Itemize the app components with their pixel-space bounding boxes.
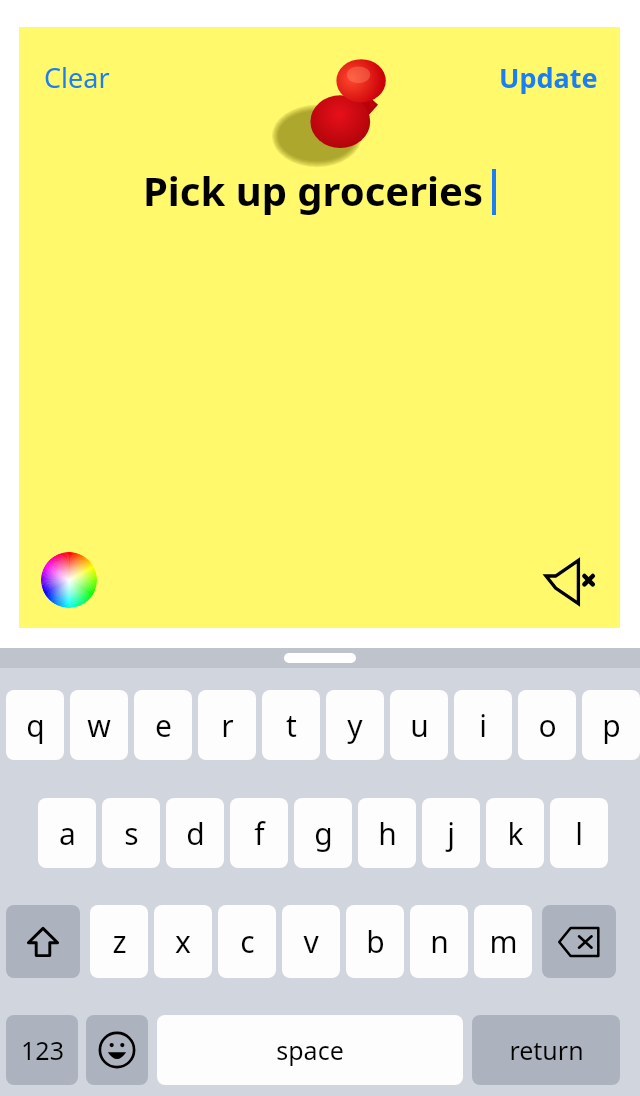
staticText: k: [507, 813, 524, 854]
button[interactable]: Emoji: [86, 1015, 148, 1085]
button[interactable]: t: [262, 690, 320, 760]
staticText: v: [303, 921, 319, 962]
staticText: m: [489, 921, 518, 962]
staticText: d: [186, 813, 205, 854]
staticText: s: [124, 813, 139, 854]
button[interactable]: Clear: [19, 45, 135, 110]
button[interactable]: b: [346, 905, 404, 978]
button[interactable]: p: [582, 690, 640, 760]
staticText: space: [276, 1033, 344, 1067]
staticText: z: [112, 921, 127, 962]
button[interactable]: k: [486, 798, 544, 868]
button[interactable]: u: [390, 690, 448, 760]
staticText: y: [347, 705, 363, 746]
button[interactable]: Shift: [6, 905, 80, 978]
staticText: Pick up groceries: [143, 163, 483, 217]
button[interactable]: v: [282, 905, 340, 978]
button[interactable]: w: [70, 690, 128, 760]
button[interactable]: i: [454, 690, 512, 760]
staticText: r: [221, 705, 234, 746]
staticText: g: [314, 813, 333, 854]
button[interactable]: Mute: [540, 552, 600, 612]
staticText: c: [240, 921, 255, 962]
button[interactable]: q: [6, 690, 64, 760]
staticText: Clear: [44, 59, 110, 96]
staticText: j: [447, 813, 455, 854]
button[interactable]: z: [90, 905, 148, 978]
staticText: w: [87, 705, 111, 746]
staticText: a: [59, 813, 76, 854]
button[interactable]: Update: [477, 45, 620, 110]
button[interactable]: g: [294, 798, 352, 868]
staticText: q: [26, 705, 45, 746]
staticText: u: [410, 705, 429, 746]
staticText: return: [509, 1033, 584, 1067]
staticText: p: [602, 705, 621, 746]
button[interactable]: a: [38, 798, 96, 868]
button[interactable]: d: [166, 798, 224, 868]
staticText: n: [430, 921, 449, 962]
staticText: e: [155, 705, 172, 746]
staticText: t: [286, 705, 297, 746]
button[interactable]: y: [326, 690, 384, 760]
button[interactable]: Keyboard handle: [284, 653, 356, 663]
staticText: 123: [21, 1033, 64, 1067]
button[interactable]: x: [154, 905, 212, 978]
staticText: l: [575, 813, 583, 854]
button[interactable]: m: [474, 905, 532, 978]
button[interactable]: Choose colour: [41, 552, 97, 608]
staticText: f: [254, 813, 265, 854]
button[interactable]: h: [358, 798, 416, 868]
button[interactable]: Backspace: [542, 905, 616, 978]
button[interactable]: o: [518, 690, 576, 760]
staticText: x: [175, 921, 191, 962]
staticText: h: [378, 813, 397, 854]
staticText: Update: [499, 59, 598, 96]
button[interactable]: s: [102, 798, 160, 868]
button[interactable]: c: [218, 905, 276, 978]
button[interactable]: return: [472, 1015, 620, 1085]
button[interactable]: l: [550, 798, 608, 868]
button[interactable]: f: [230, 798, 288, 868]
button[interactable]: j: [422, 798, 480, 868]
other: Pin: [274, 52, 404, 172]
button[interactable]: n: [410, 905, 468, 978]
button[interactable]: 123: [6, 1015, 78, 1085]
staticText: o: [538, 705, 557, 746]
staticText: b: [366, 921, 385, 962]
button[interactable]: r: [198, 690, 256, 760]
staticText: i: [479, 705, 487, 746]
button[interactable]: e: [134, 690, 192, 760]
button[interactable]: space: [157, 1015, 463, 1085]
